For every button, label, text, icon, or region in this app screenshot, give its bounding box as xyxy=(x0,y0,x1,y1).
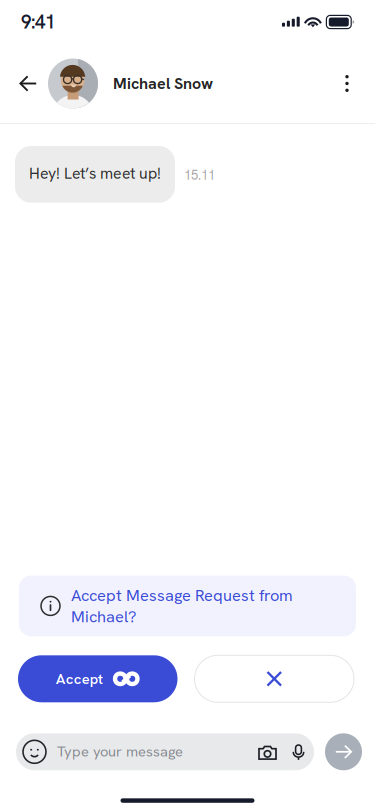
staticText: Hey! Let’s meet up! xyxy=(29,163,161,184)
staticText: Accept Message Request from Michael? xyxy=(71,585,293,627)
staticText: Type your message xyxy=(57,742,183,761)
staticText: Michael Snow xyxy=(113,73,213,94)
button[interactable]: Send xyxy=(325,733,362,770)
staticText: Accept xyxy=(56,669,103,688)
staticText: 9:41 xyxy=(21,10,55,34)
button[interactable]: Michael Snow xyxy=(48,57,213,109)
button[interactable]: Back xyxy=(14,61,42,105)
button[interactable]: Accept xyxy=(18,655,177,702)
button[interactable]: More options xyxy=(333,61,361,105)
button[interactable]: Decline xyxy=(194,655,354,702)
staticText: 15.11 xyxy=(184,167,215,184)
